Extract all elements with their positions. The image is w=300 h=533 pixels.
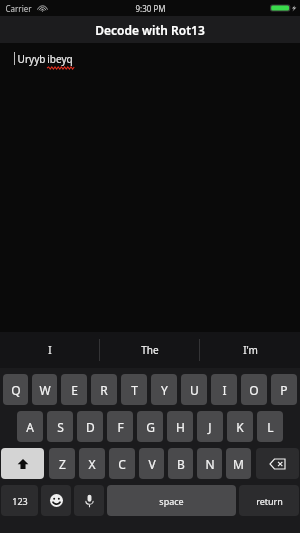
staticText: L — [267, 419, 274, 435]
staticText: C — [118, 456, 126, 472]
staticText: R — [100, 382, 108, 398]
staticText: Decode with Rot13 — [95, 22, 205, 38]
staticText: W — [39, 382, 51, 398]
button[interactable]: F — [107, 411, 133, 442]
button[interactable]: M — [226, 448, 251, 479]
button[interactable]: I — [211, 374, 237, 405]
staticText: N — [205, 456, 215, 472]
button[interactable]: A — [17, 411, 43, 442]
button[interactable]: H — [167, 411, 193, 442]
staticText: ibeyq — [47, 52, 73, 66]
button[interactable]: V — [139, 448, 164, 479]
button[interactable]: I'm — [200, 332, 300, 368]
button[interactable]: I — [0, 332, 100, 368]
button[interactable]: G — [137, 411, 163, 442]
staticText: Y — [161, 382, 168, 398]
button[interactable]: B — [168, 448, 193, 479]
button[interactable]: W — [32, 374, 57, 405]
button[interactable]: The — [100, 332, 200, 368]
button[interactable]: 123 — [1, 485, 38, 516]
staticText: The — [141, 343, 159, 357]
button[interactable]: Q — [3, 374, 28, 405]
staticText: Uryyb — [16, 52, 47, 66]
staticText: G — [146, 419, 155, 435]
button[interactable]: U — [181, 374, 207, 405]
button[interactable]: N — [197, 448, 222, 479]
staticText: E — [71, 382, 78, 398]
button[interactable]: D — [77, 411, 103, 442]
staticText: space — [159, 495, 184, 507]
button[interactable]: space — [107, 485, 236, 516]
button[interactable]: O — [241, 374, 267, 405]
staticText: K — [236, 419, 244, 435]
button[interactable]: Shift — [1, 448, 44, 479]
staticText: P — [280, 382, 288, 398]
button[interactable]: Dictation — [74, 485, 104, 516]
button[interactable]: return — [239, 485, 299, 516]
staticText: S — [57, 419, 64, 435]
button[interactable]: Emoji — [41, 485, 71, 516]
button[interactable]: T — [121, 374, 147, 405]
staticText: H — [176, 419, 185, 435]
button[interactable]: E — [61, 374, 87, 405]
staticText: T — [131, 382, 138, 398]
button[interactable]: K — [227, 411, 253, 442]
staticText: Z — [59, 456, 66, 472]
staticText: I — [48, 343, 52, 357]
staticText: F — [117, 419, 124, 435]
staticText: V — [148, 456, 156, 472]
button[interactable]: J — [197, 411, 223, 442]
staticText: X — [88, 456, 96, 472]
button[interactable]: X — [79, 448, 105, 479]
button[interactable]: Backspace — [256, 448, 299, 479]
staticText: I — [222, 382, 227, 398]
button[interactable]: P — [271, 374, 297, 405]
staticText: D — [86, 419, 95, 435]
staticText: I'm — [243, 343, 258, 357]
staticText: B — [177, 456, 185, 472]
button[interactable]: C — [109, 448, 135, 479]
button[interactable]: L — [257, 411, 283, 442]
button[interactable]: Y — [151, 374, 177, 405]
button[interactable]: S — [47, 411, 73, 442]
staticText: M — [233, 456, 244, 472]
staticText: return — [256, 495, 283, 507]
staticText: A — [26, 419, 34, 435]
staticText: U — [190, 382, 199, 398]
staticText: 9:30 PM — [135, 3, 166, 14]
staticText: Q — [11, 382, 21, 398]
staticText: Carrier — [5, 3, 32, 14]
button[interactable]: Z — [49, 448, 75, 479]
staticText: J — [208, 419, 212, 435]
staticText: 123 — [12, 495, 28, 507]
staticText: O — [249, 382, 259, 398]
button[interactable]: R — [91, 374, 117, 405]
